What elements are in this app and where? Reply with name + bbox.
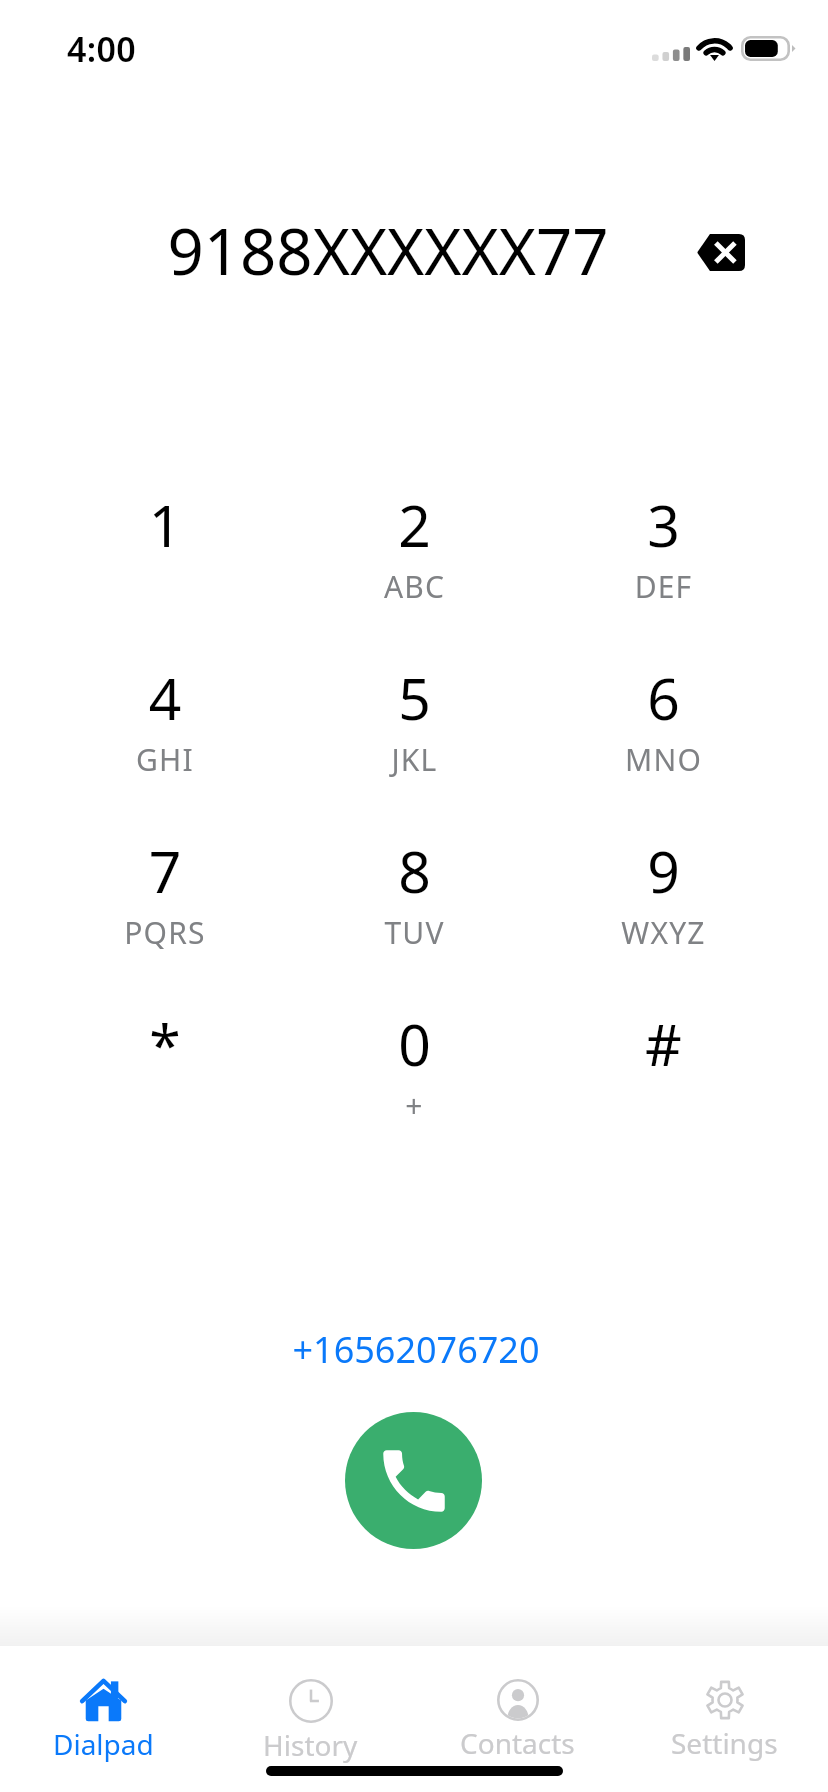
- staticText: +: [290, 1085, 539, 1126]
- button[interactable]: Contacts: [414, 1646, 621, 1766]
- staticText: MNO: [539, 739, 788, 780]
- button[interactable]: 1: [40, 486, 290, 659]
- button[interactable]: 3: [539, 486, 788, 659]
- staticText: Settings: [671, 1724, 778, 1762]
- staticText: *: [40, 1005, 290, 1083]
- staticText: 2: [290, 486, 539, 564]
- staticText: #: [539, 1005, 788, 1083]
- staticText: PQRS: [40, 912, 290, 953]
- button[interactable]: History: [207, 1646, 414, 1766]
- staticText: +16562076720: [282, 1325, 550, 1374]
- staticText: JKL: [290, 739, 539, 780]
- staticText: 1: [40, 486, 290, 564]
- staticText: 9188XXXXXX77: [0, 207, 802, 293]
- staticText: 9: [539, 832, 788, 910]
- staticText: 5: [290, 659, 539, 737]
- staticText: Dialpad: [53, 1725, 154, 1763]
- button[interactable]: Backspace: [687, 219, 753, 285]
- staticText: DEF: [539, 566, 788, 607]
- button[interactable]: 2: [290, 486, 539, 659]
- staticText: 6: [539, 659, 788, 737]
- staticText: TUV: [290, 912, 539, 953]
- button[interactable]: 8: [290, 832, 539, 1005]
- staticText: Contacts: [460, 1724, 575, 1762]
- button[interactable]: 0: [290, 1005, 539, 1178]
- staticText: History: [263, 1726, 358, 1764]
- button[interactable]: Call: [345, 1412, 482, 1549]
- staticText: ABC: [290, 566, 539, 607]
- staticText: 0: [290, 1005, 539, 1083]
- staticText: 7: [40, 832, 290, 910]
- button[interactable]: *: [40, 1005, 290, 1178]
- button[interactable]: Settings: [621, 1646, 828, 1766]
- button[interactable]: 5: [290, 659, 539, 832]
- staticText: 3: [539, 486, 788, 564]
- button[interactable]: 7: [40, 832, 290, 1005]
- button[interactable]: Dialpad: [0, 1646, 207, 1766]
- button[interactable]: 9: [539, 832, 788, 1005]
- button[interactable]: +16562076720: [282, 1321, 550, 1373]
- button[interactable]: 4: [40, 659, 290, 832]
- staticText: 8: [290, 832, 539, 910]
- button[interactable]: #: [539, 1005, 788, 1178]
- button[interactable]: 6: [539, 659, 788, 832]
- staticText: WXYZ: [539, 912, 788, 953]
- staticText: GHI: [40, 739, 290, 780]
- staticText: 4:00: [67, 26, 136, 72]
- staticText: 4: [40, 659, 290, 737]
